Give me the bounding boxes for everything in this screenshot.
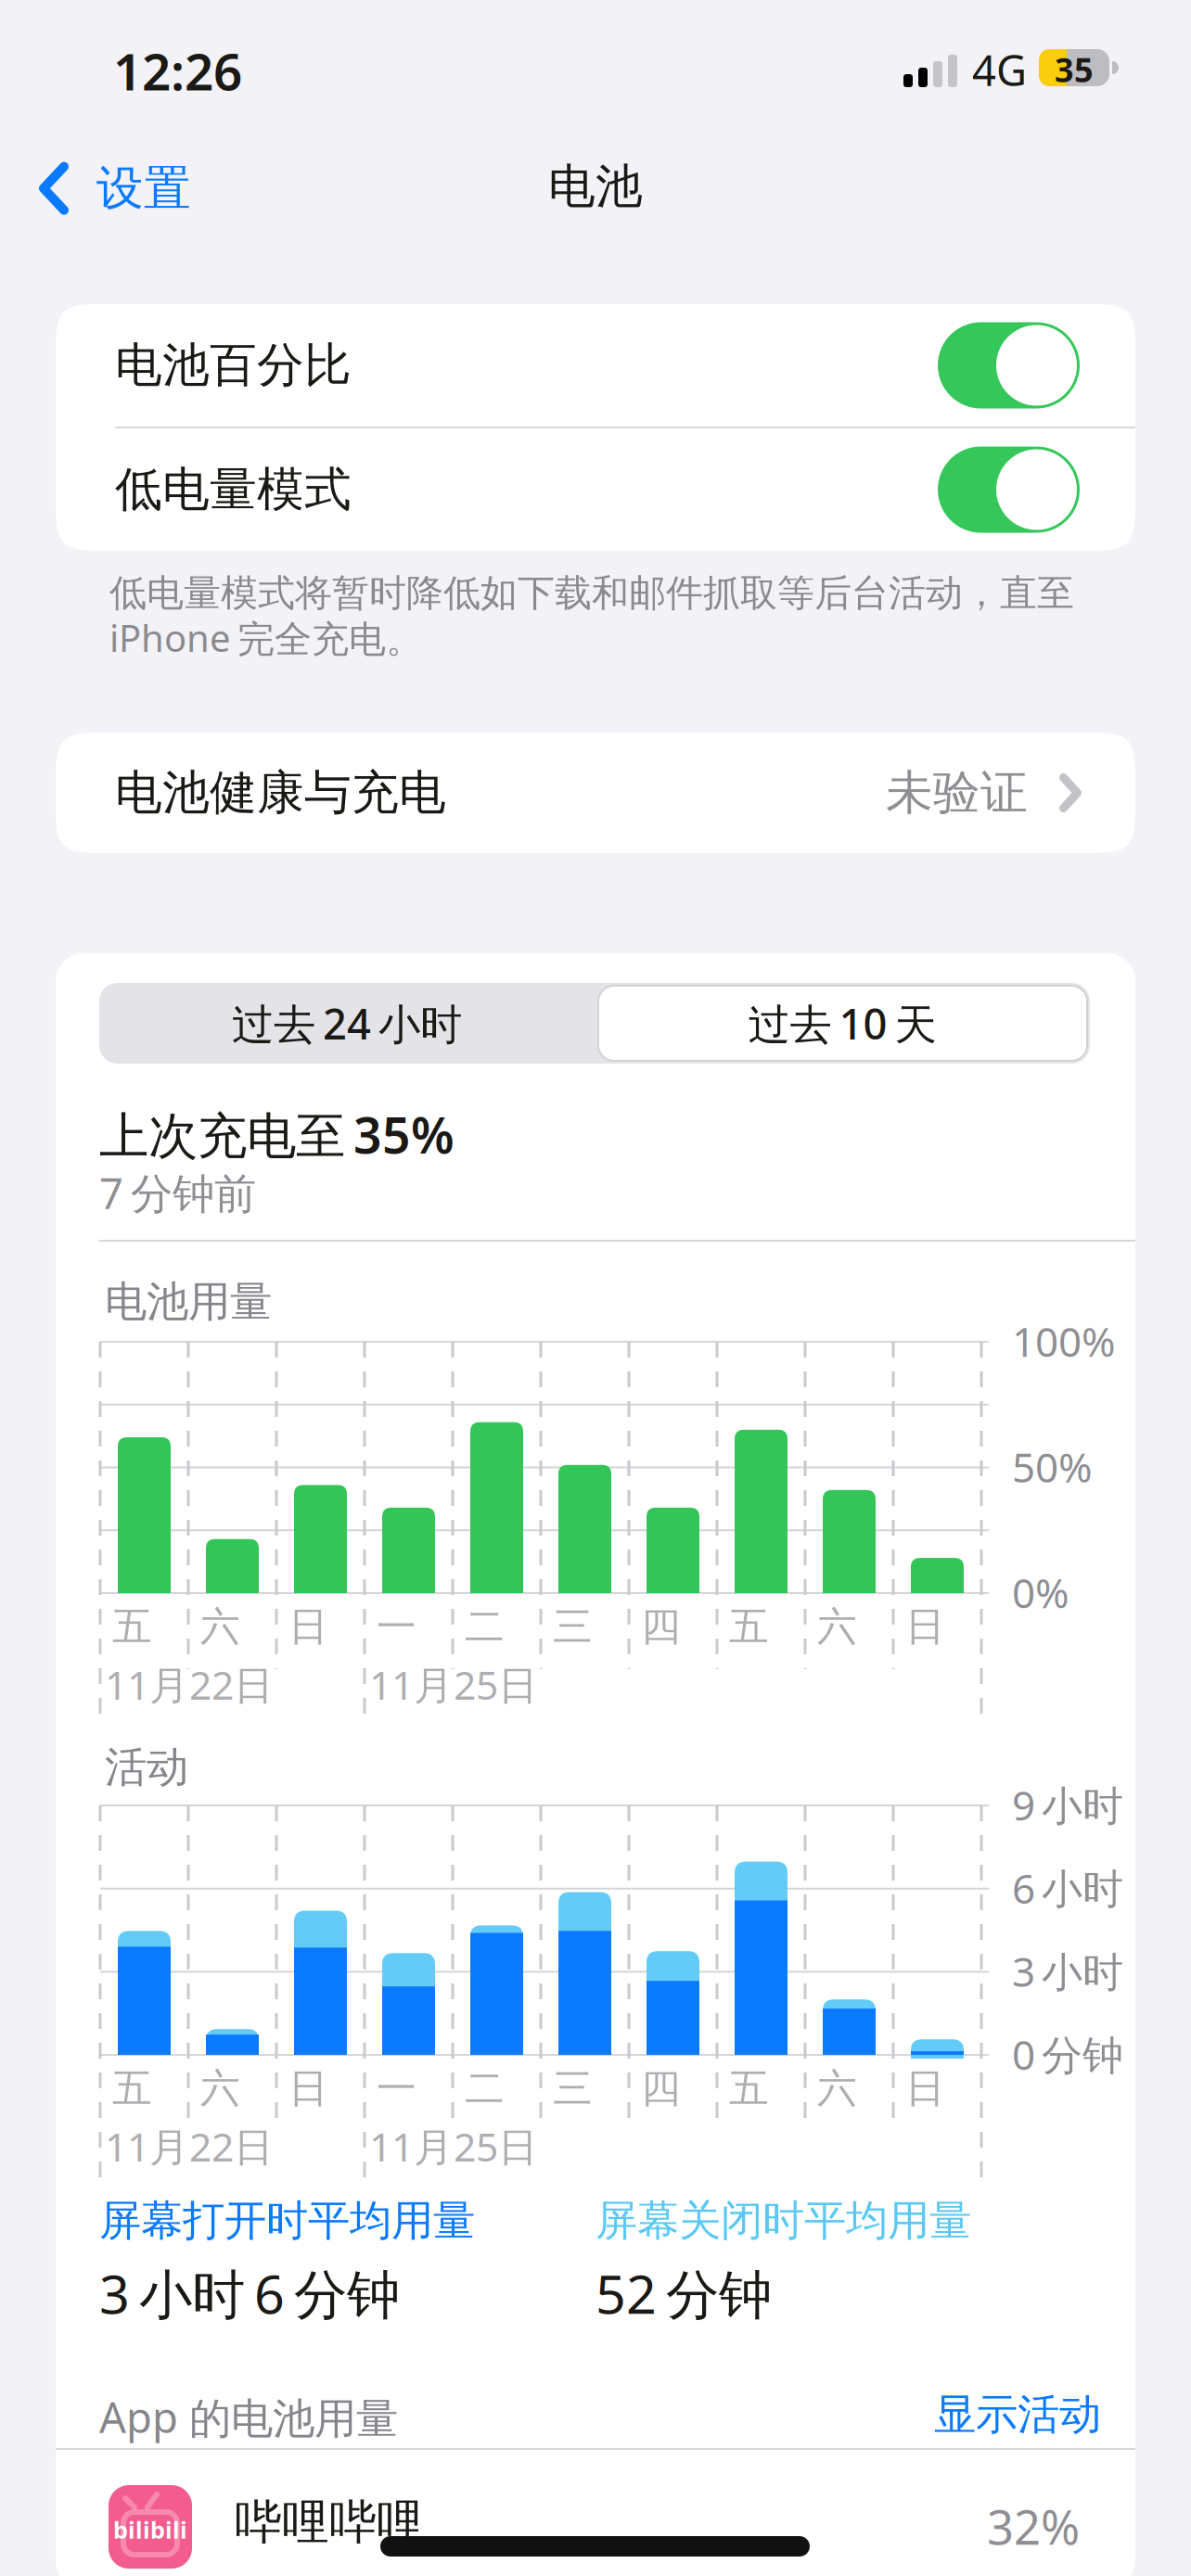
staticText: 11月22日 xyxy=(105,2120,274,2172)
button[interactable]: 低电量模式 xyxy=(938,446,1080,533)
staticText: 4G xyxy=(972,42,1027,98)
staticText: 日 xyxy=(905,2064,945,2113)
staticText: 未验证 xyxy=(886,764,1028,822)
staticText: 六 xyxy=(817,2064,857,2113)
button[interactable]: 电池健康与充电 xyxy=(56,733,1135,853)
staticText: 低电量模式将暂时降低如下载和邮件抓取等后台活动，直至 xyxy=(109,570,1074,616)
button[interactable]: 显示活动 xyxy=(56,953,1101,2440)
staticText: 11月22日 xyxy=(105,1658,274,1711)
staticText: 0 分钟 xyxy=(1012,2027,1123,2081)
staticText: 日 xyxy=(905,1602,945,1651)
staticText: 32% xyxy=(987,2495,1080,2558)
staticText: 五 xyxy=(729,1602,769,1651)
staticText: 屏幕打开时平均用量 xyxy=(99,2195,475,2247)
staticText: 一 xyxy=(377,1602,416,1651)
staticText: 四 xyxy=(641,1602,681,1651)
staticText: 五 xyxy=(729,2064,769,2113)
staticText: 50% xyxy=(1012,1440,1093,1494)
staticText: 12:26 xyxy=(113,37,242,104)
staticText: 过去 10 天 xyxy=(748,995,936,1051)
button[interactable]: 过去 24 小时 xyxy=(99,983,595,1064)
staticText: 3 小时 xyxy=(1012,1944,1123,1998)
staticText: 电池 xyxy=(548,158,643,215)
staticText: 六 xyxy=(817,1602,857,1651)
staticText: 6 小时 xyxy=(1012,1861,1123,1915)
button[interactable]: bilibili xyxy=(56,953,1135,2569)
staticText: 电池百分比 xyxy=(115,337,352,394)
staticText: iPhone 完全充电。 xyxy=(109,613,423,662)
staticText: 哔哩哔哩 xyxy=(235,2493,424,2551)
staticText: 35 xyxy=(1055,47,1094,92)
staticText: 五 xyxy=(112,2064,152,2113)
staticText: 显示活动 xyxy=(934,2389,1101,2440)
staticText: 上次充电至 35% xyxy=(99,1102,455,1167)
staticText: 100% xyxy=(1012,1314,1116,1368)
staticText: 52 分钟 xyxy=(595,2258,772,2329)
staticText: 3 小时 6 分钟 xyxy=(99,2258,400,2329)
button[interactable]: 过去 10 天 xyxy=(595,983,1090,1064)
staticText: 六 xyxy=(200,1602,240,1651)
staticText: 一 xyxy=(377,2064,416,2113)
staticText: 六 xyxy=(200,2064,240,2113)
button[interactable]: 电池百分比 xyxy=(938,322,1080,408)
staticText: 11月25日 xyxy=(369,1658,538,1711)
staticText: 二 xyxy=(465,2064,505,2113)
staticText: 三 xyxy=(553,1602,593,1651)
staticText: 过去 24 小时 xyxy=(232,995,462,1051)
staticText: 三 xyxy=(553,2064,593,2113)
staticText: 0% xyxy=(1012,1565,1069,1619)
staticText: 低电量模式 xyxy=(115,461,352,518)
staticText: 五 xyxy=(112,1602,152,1651)
staticText: bilibili xyxy=(113,2514,187,2545)
staticText: 活动 xyxy=(105,1741,188,1793)
staticText: 设置 xyxy=(96,159,191,217)
staticText: 四 xyxy=(641,2064,681,2113)
staticText: App 的电池用量 xyxy=(99,2389,398,2445)
staticText: 屏幕关闭时平均用量 xyxy=(595,2195,971,2247)
staticText: 7 分钟前 xyxy=(99,1165,256,1220)
staticText: 二 xyxy=(465,1602,505,1651)
staticText: 电池健康与充电 xyxy=(115,764,446,822)
staticText: 11月25日 xyxy=(369,2120,538,2172)
staticText: 日 xyxy=(288,2064,328,2113)
button[interactable]: 返回设置 xyxy=(0,0,191,217)
staticText: 9 小时 xyxy=(1012,1778,1123,1832)
staticText: 电池用量 xyxy=(105,1276,272,1328)
staticText: 日 xyxy=(288,1602,328,1651)
